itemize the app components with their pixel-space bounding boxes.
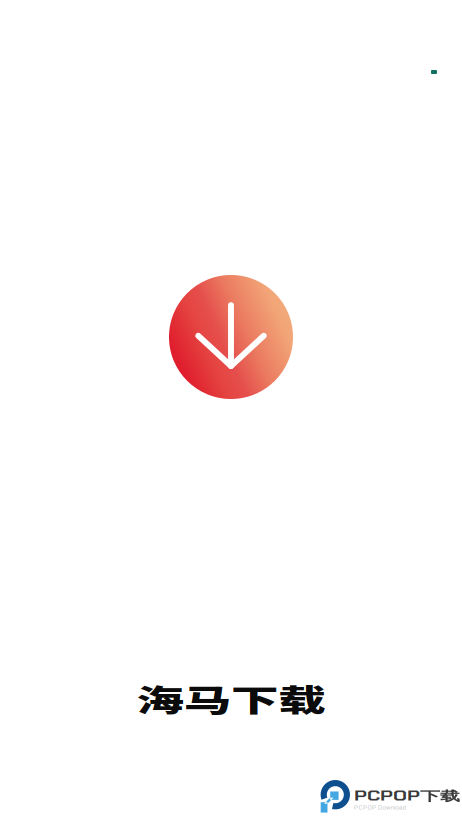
staticText: PCPOP Download <box>354 804 405 811</box>
button[interactable]: PCPOP下载 <box>321 780 462 813</box>
button[interactable]: 海马下载 <box>169 275 293 399</box>
staticText: PCPOP下载 <box>354 783 460 809</box>
staticText: 海马下载 <box>109 654 353 742</box>
